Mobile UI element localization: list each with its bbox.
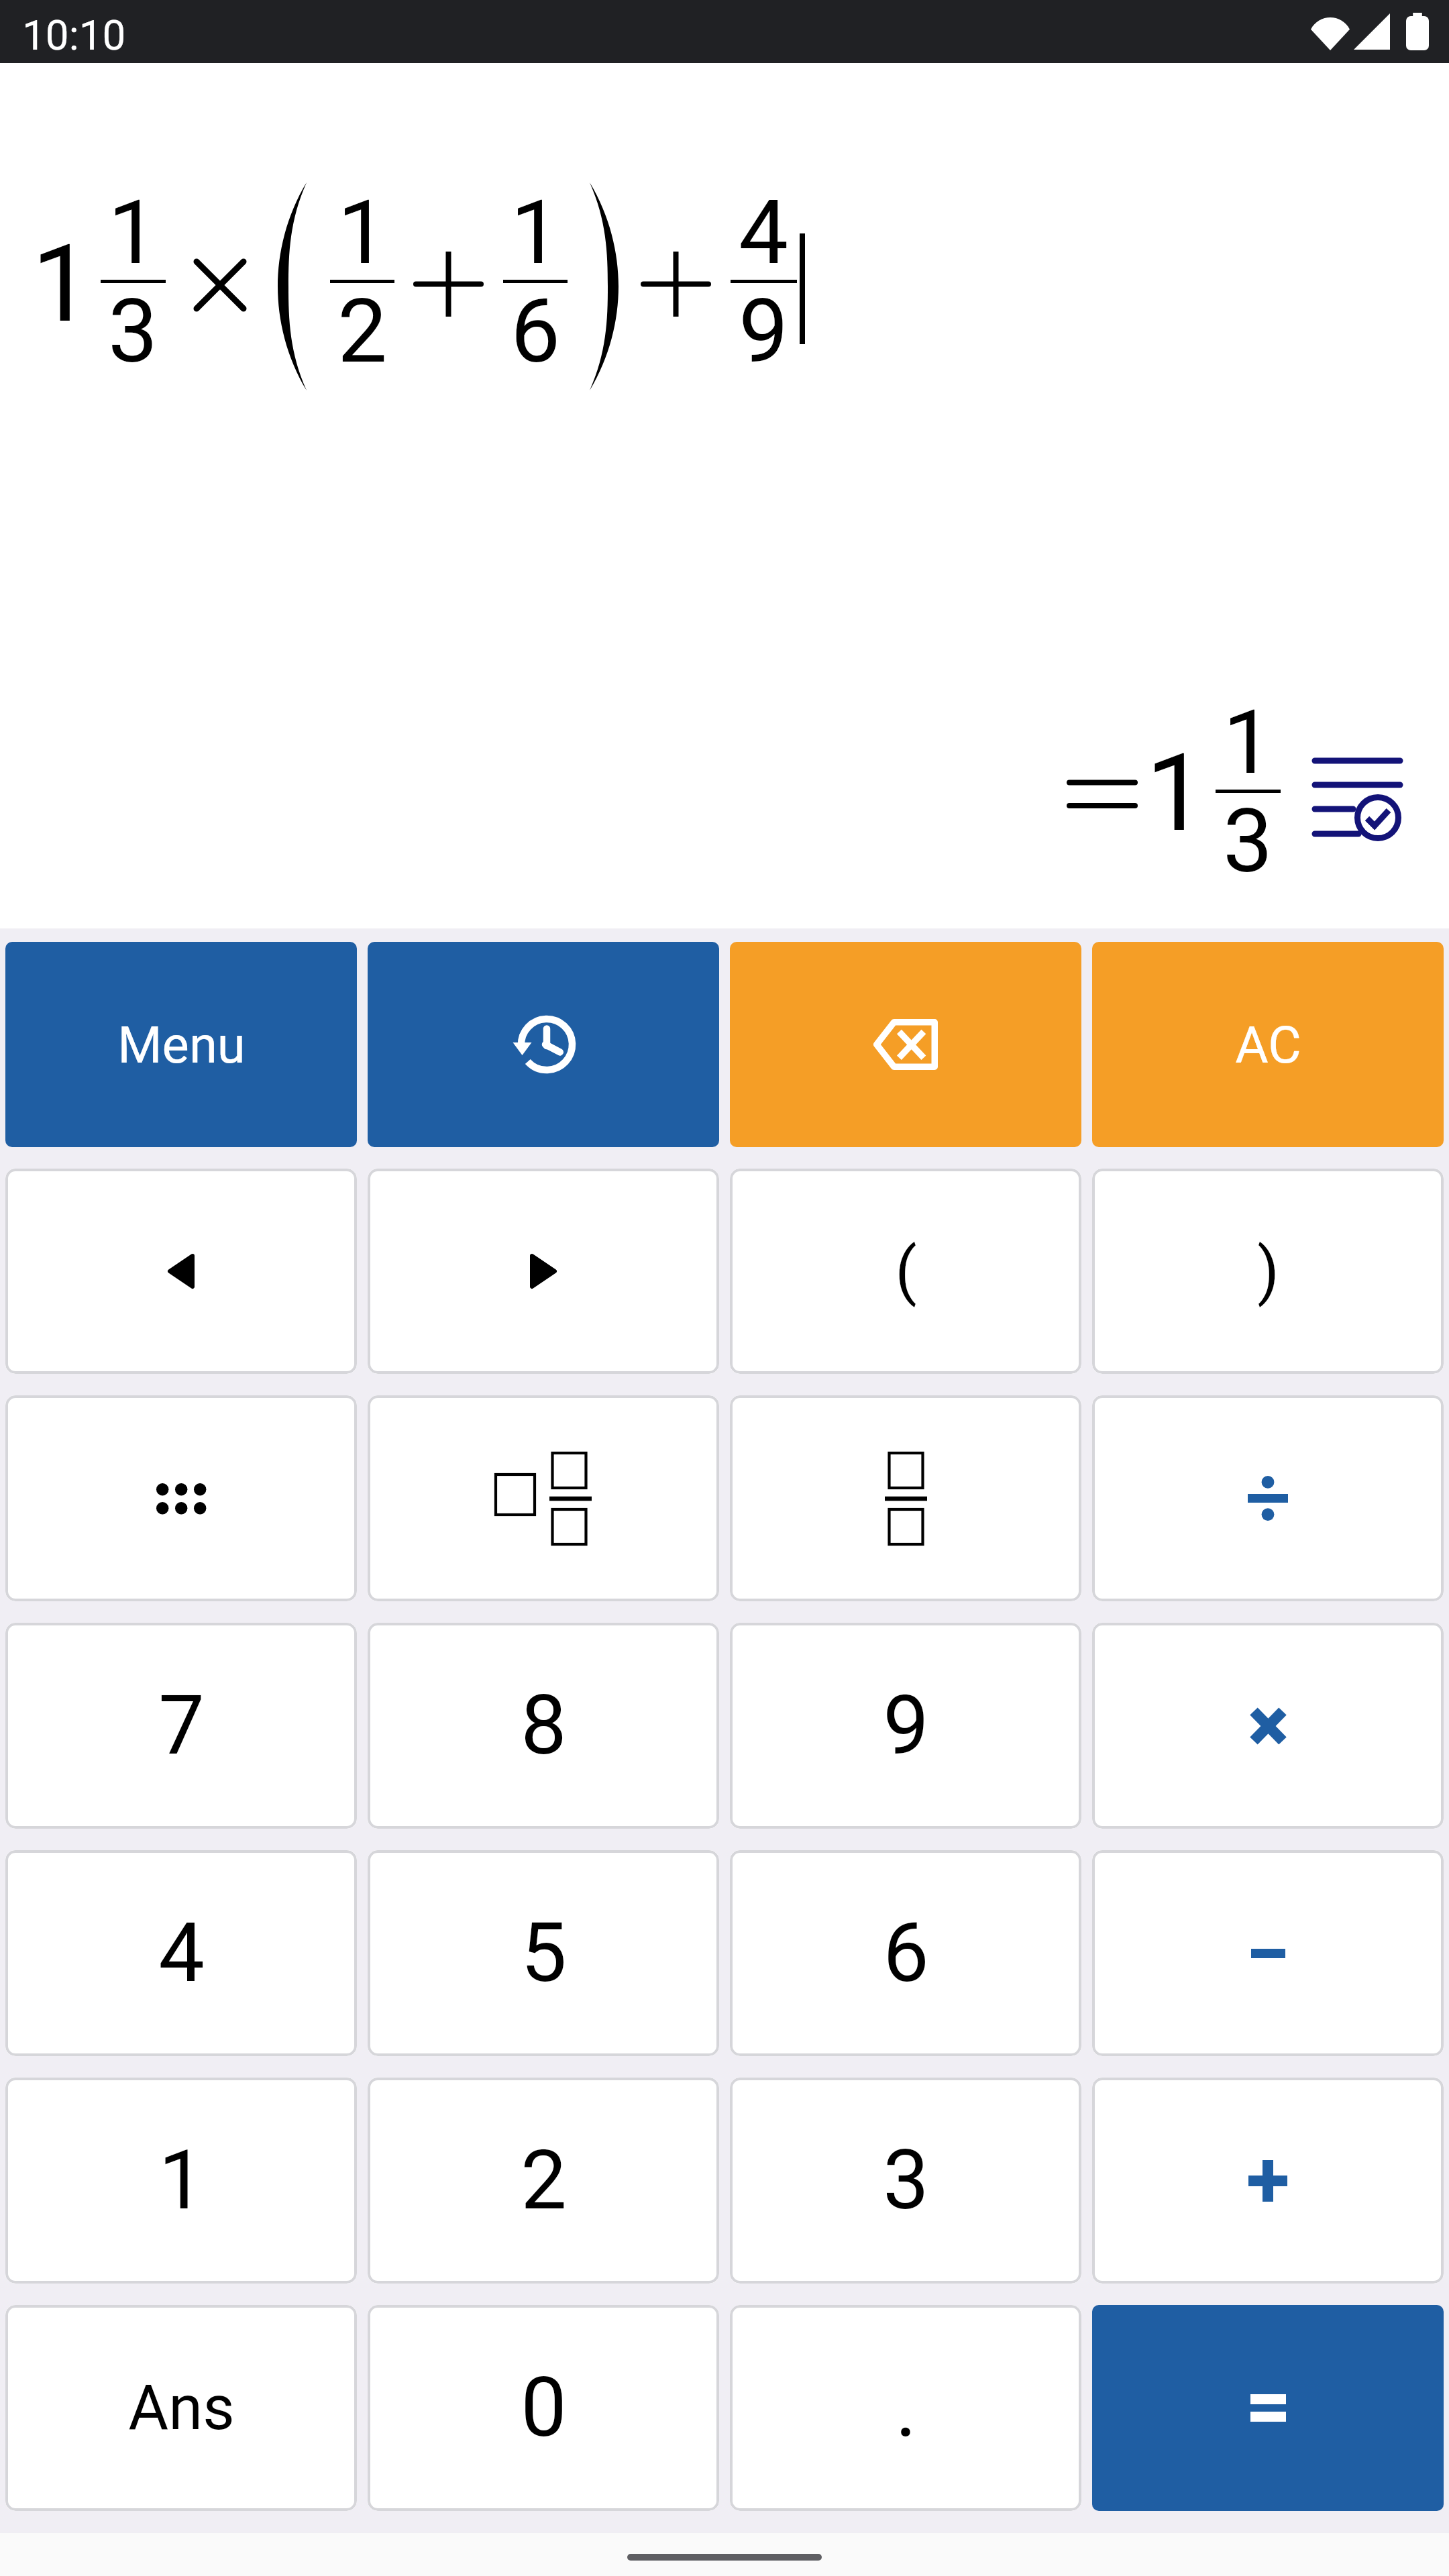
button[interactable]: Move left bbox=[5, 1169, 357, 1374]
button[interactable]: 4 bbox=[5, 1850, 357, 2056]
button[interactable]: 2 bbox=[368, 2078, 719, 2284]
button[interactable]: Mixed number bbox=[368, 1395, 719, 1601]
button[interactable]: 1 bbox=[5, 2078, 357, 2284]
staticText: 2 bbox=[521, 2133, 567, 2229]
staticText: 2 bbox=[337, 280, 388, 384]
staticText: 4 bbox=[158, 1905, 205, 2001]
staticText: 3 bbox=[108, 280, 158, 384]
staticText: 1 bbox=[511, 181, 561, 285]
staticText: 6 bbox=[883, 1905, 929, 2001]
staticText: 5 bbox=[521, 1905, 567, 2001]
button[interactable]: Minus bbox=[1092, 1850, 1444, 2056]
staticText: 9 bbox=[739, 280, 789, 384]
button[interactable]: ( bbox=[730, 1169, 1081, 1374]
staticText: 1 bbox=[32, 221, 92, 347]
button[interactable]: . bbox=[730, 2305, 1081, 2511]
button[interactable]: Move right bbox=[368, 1169, 719, 1374]
button[interactable]: History bbox=[368, 942, 719, 1147]
button[interactable]: 3 bbox=[730, 2078, 1081, 2284]
button[interactable]: 8 bbox=[368, 1623, 719, 1829]
staticText: 6 bbox=[511, 280, 561, 384]
button[interactable]: Multiply bbox=[1092, 1623, 1444, 1829]
button[interactable]: 0 bbox=[368, 2305, 719, 2511]
button[interactable]: ) bbox=[1092, 1169, 1444, 1374]
button[interactable]: Fraction bbox=[730, 1395, 1081, 1601]
staticText: 3 bbox=[1223, 790, 1273, 894]
staticText: ( bbox=[895, 1234, 917, 1308]
staticText: . bbox=[895, 2360, 917, 2456]
button[interactable]: AC bbox=[1092, 942, 1444, 1147]
staticText: 9 bbox=[883, 1678, 929, 1774]
button[interactable]: Menu bbox=[5, 942, 357, 1147]
staticText: 1 bbox=[1146, 731, 1206, 857]
staticText: AC bbox=[1235, 1015, 1301, 1075]
staticText: 7 bbox=[158, 1678, 205, 1774]
button[interactable]: Plus bbox=[1092, 2078, 1444, 2284]
staticText: Ans bbox=[128, 2372, 235, 2445]
button[interactable]: Ans bbox=[5, 2305, 357, 2511]
button[interactable]: 6 bbox=[730, 1850, 1081, 2056]
staticText: 8 bbox=[521, 1678, 567, 1774]
staticText: 1 bbox=[1223, 691, 1273, 795]
button[interactable]: Backspace bbox=[730, 942, 1081, 1147]
staticText: 10:10 bbox=[22, 11, 126, 60]
button[interactable]: 5 bbox=[368, 1850, 719, 2056]
staticText: 1 bbox=[108, 181, 158, 285]
button[interactable]: Divide bbox=[1092, 1395, 1444, 1601]
staticText: 1 bbox=[158, 2133, 205, 2229]
button[interactable]: More bbox=[5, 1395, 357, 1601]
staticText: Menu bbox=[117, 1015, 246, 1075]
button[interactable]: 9 bbox=[730, 1623, 1081, 1829]
staticText: ) bbox=[1257, 1234, 1279, 1308]
staticText: 0 bbox=[521, 2360, 567, 2456]
button[interactable]: Equals bbox=[1092, 2305, 1444, 2511]
staticText: 1 bbox=[337, 181, 388, 285]
button[interactable]: Result format bbox=[1310, 748, 1408, 846]
staticText: 3 bbox=[883, 2133, 929, 2229]
button[interactable]: 7 bbox=[5, 1623, 357, 1829]
staticText: 4 bbox=[739, 181, 789, 285]
